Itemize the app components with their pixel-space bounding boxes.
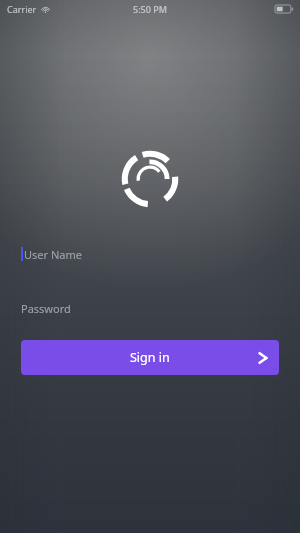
other: Sign in: [258, 350, 268, 366]
staticText: User Name: [24, 247, 82, 262]
staticText: Carrier: [7, 3, 37, 15]
button[interactable]: User Name: [0, 243, 300, 265]
button[interactable]: Password: [0, 297, 300, 319]
staticText: 5:50 PM: [133, 3, 167, 15]
staticText: Sign in: [130, 349, 170, 366]
staticText: Password: [21, 301, 71, 316]
button[interactable]: Sign in: [21, 340, 279, 375]
